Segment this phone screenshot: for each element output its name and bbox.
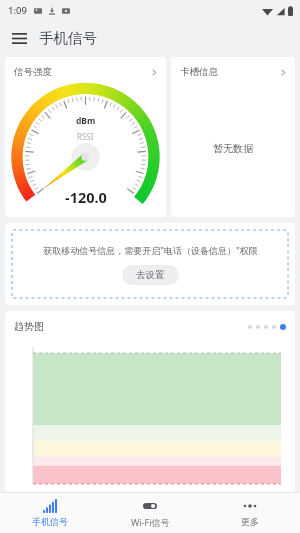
button[interactable]: 更多 <box>200 493 300 533</box>
staticText: 手机信号 <box>39 29 97 47</box>
staticText: 信号强度 <box>14 66 52 78</box>
staticText: Wi-Fi信号 <box>131 516 170 528</box>
staticText: dBm <box>76 115 96 127</box>
button[interactable]: 卡槽信息 <box>171 57 295 79</box>
staticText: RSSI <box>77 131 94 142</box>
staticText: -120.0 <box>65 187 107 207</box>
staticText: 获取移动信号信息，需要开启"电话（设备信息）"权限 <box>43 244 258 256</box>
staticText: 趋势图 <box>14 320 44 333</box>
button[interactable]: 信号强度 <box>5 57 166 79</box>
staticText: 1:09 <box>8 4 27 17</box>
staticText: 手机信号 <box>32 516 68 527</box>
staticText: 暂无数据 <box>213 142 253 155</box>
button[interactable]: Menu <box>6 25 32 51</box>
staticText: 卡槽信息 <box>180 66 218 78</box>
button[interactable]: 手机信号 <box>0 493 100 533</box>
staticText: 更多 <box>241 516 259 527</box>
button[interactable]: Wi-Fi信号 <box>100 493 200 533</box>
staticText: 去设置 <box>136 269 165 281</box>
button[interactable]: 去设置 <box>122 265 179 285</box>
